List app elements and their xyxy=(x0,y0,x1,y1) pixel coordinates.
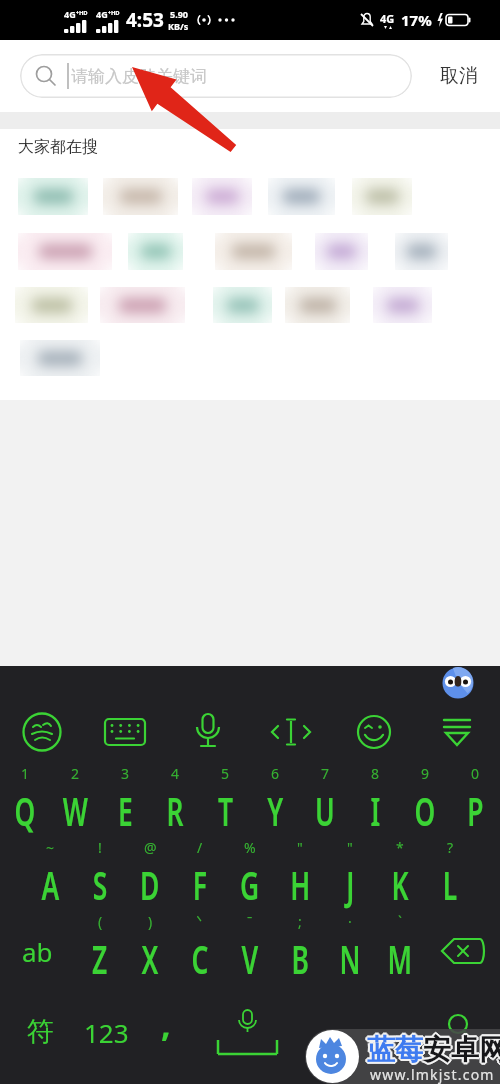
button[interactable]: · xyxy=(325,912,375,990)
button[interactable] xyxy=(103,178,178,215)
staticText: 4G xyxy=(380,11,395,26)
staticText: D xyxy=(140,857,160,911)
staticText: Z xyxy=(92,931,108,985)
button[interactable]: 取消 xyxy=(440,64,478,88)
button[interactable] xyxy=(18,178,88,215)
staticText: 蓝莓安卓网 xyxy=(365,1032,500,1067)
button[interactable]: " xyxy=(275,838,325,912)
button[interactable]: ( xyxy=(75,912,125,990)
button[interactable] xyxy=(83,700,166,764)
staticText: C xyxy=(191,931,209,985)
staticText: 请输入皮肤关键词 xyxy=(71,66,207,87)
button[interactable]: 1 xyxy=(0,764,50,838)
button[interactable] xyxy=(315,233,368,270)
staticText: I xyxy=(370,783,380,837)
staticText: 丶 xyxy=(193,912,207,931)
staticText: 6 xyxy=(271,764,280,783)
button[interactable] xyxy=(332,700,415,764)
staticText: / xyxy=(197,838,203,857)
staticText: " xyxy=(297,838,303,857)
staticText: 2 xyxy=(71,764,80,783)
staticText: ? xyxy=(447,838,454,857)
button[interactable]: 2 xyxy=(50,764,100,838)
staticText: X xyxy=(141,931,159,985)
button[interactable]: 6 xyxy=(250,764,300,838)
button[interactable] xyxy=(213,287,272,323)
staticText: 大家都在搜 xyxy=(18,137,98,157)
button[interactable] xyxy=(285,287,350,323)
button[interactable] xyxy=(373,287,432,323)
button[interactable] xyxy=(395,233,448,270)
button[interactable]: 7 xyxy=(300,764,350,838)
staticText: " xyxy=(347,838,353,857)
button[interactable]: 0 xyxy=(450,764,500,838)
staticText: M xyxy=(387,931,413,985)
button[interactable]: 5 xyxy=(200,764,250,838)
staticText: 3 xyxy=(121,764,130,783)
staticText: ~ xyxy=(46,838,55,857)
button[interactable] xyxy=(20,340,100,376)
button[interactable]: ? xyxy=(425,838,475,912)
staticText: 蓝莓安卓网 xyxy=(368,1031,500,1066)
button[interactable]: ab xyxy=(0,912,75,990)
button[interactable] xyxy=(352,178,412,215)
staticText: 5.90 xyxy=(170,8,188,20)
staticText: ; xyxy=(298,912,302,931)
button[interactable] xyxy=(100,287,185,323)
staticText: 蓝莓安卓网 xyxy=(367,1034,500,1069)
button[interactable] xyxy=(268,178,335,215)
button[interactable] xyxy=(18,233,112,270)
staticText: 0 xyxy=(471,764,480,783)
button[interactable] xyxy=(210,1004,286,1060)
button[interactable]: , xyxy=(146,1000,186,1048)
staticText: 蓝莓安卓网 xyxy=(369,1032,500,1067)
button[interactable] xyxy=(425,912,500,990)
button[interactable]: / xyxy=(175,838,225,912)
staticText: W xyxy=(63,783,88,837)
staticText: E xyxy=(118,783,133,837)
staticText: A xyxy=(42,857,59,911)
button[interactable]: 4 xyxy=(150,764,200,838)
button[interactable] xyxy=(166,700,249,764)
staticText: ˉ xyxy=(247,912,253,931)
staticText: 蓝莓安卓网 xyxy=(367,1030,500,1065)
button[interactable]: ˉ xyxy=(225,912,275,990)
button[interactable]: ~ xyxy=(25,838,75,912)
button[interactable]: @ xyxy=(125,838,175,912)
staticText: 1 xyxy=(21,764,30,783)
button[interactable] xyxy=(0,700,83,764)
staticText: G xyxy=(240,857,260,911)
button[interactable]: 8 xyxy=(350,764,400,838)
button[interactable] xyxy=(215,233,292,270)
button[interactable]: % xyxy=(225,838,275,912)
button[interactable]: * xyxy=(375,838,425,912)
staticText: ab xyxy=(22,934,53,969)
button[interactable] xyxy=(15,287,88,323)
staticText: Y xyxy=(267,783,284,837)
button[interactable]: ` xyxy=(375,912,425,990)
button[interactable]: ) xyxy=(125,912,175,990)
button[interactable]: " xyxy=(325,838,375,912)
button[interactable]: 丶 xyxy=(175,912,225,990)
button[interactable] xyxy=(128,233,183,270)
button[interactable]: 符 xyxy=(16,1008,64,1056)
staticText: , xyxy=(161,1001,171,1047)
button[interactable] xyxy=(415,700,498,764)
staticText: 蓝莓安卓网 xyxy=(366,1031,500,1066)
button[interactable]: 9 xyxy=(400,764,450,838)
staticText: 123 xyxy=(84,1015,129,1050)
staticText: 蓝莓 xyxy=(367,1032,423,1067)
staticText: 符 xyxy=(27,1015,54,1049)
button[interactable] xyxy=(192,178,252,215)
button[interactable]: ! xyxy=(75,838,125,912)
staticText: 蓝莓安卓网 xyxy=(368,1033,500,1068)
button[interactable]: ; xyxy=(275,912,325,990)
staticText: 4G⁺ᴴᴰ xyxy=(96,8,120,20)
button[interactable] xyxy=(249,700,332,764)
staticText: www.lmkjst.com xyxy=(370,1065,495,1084)
button[interactable]: 请输入皮肤关键词 xyxy=(20,54,412,98)
staticText: 蓝莓安卓网 xyxy=(366,1033,500,1068)
staticText: 安卓网 xyxy=(423,1032,500,1067)
button[interactable]: 123 xyxy=(78,1008,134,1056)
button[interactable]: 3 xyxy=(100,764,150,838)
